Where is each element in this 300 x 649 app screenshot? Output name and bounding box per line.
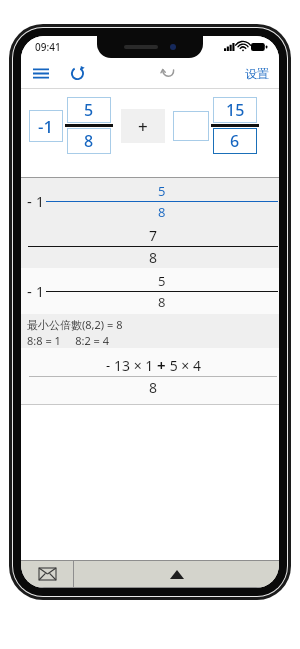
staticText: 6 — [230, 130, 240, 152]
staticText: 8 — [149, 378, 158, 397]
staticText: - — [106, 356, 114, 374]
button[interactable]: 5 — [67, 97, 111, 123]
staticText: 5 — [158, 182, 166, 200]
staticText: 09:41 — [35, 40, 61, 54]
button[interactable]: 最小公倍數(8,2) = 8 — [21, 314, 279, 348]
button[interactable]: -1 — [29, 110, 63, 142]
button[interactable]: Refresh — [63, 59, 91, 87]
staticText: 8 — [158, 293, 166, 311]
button[interactable]: Show keypad — [74, 561, 279, 587]
staticText: 设置 — [245, 66, 269, 81]
staticText: 最小公倍數(8,2) = 8 — [27, 317, 123, 332]
button[interactable]: 7 — [21, 224, 279, 268]
staticText: + — [138, 115, 148, 138]
button[interactable]: - — [21, 178, 279, 224]
button[interactable]: Mail — [21, 561, 73, 587]
staticText: - — [27, 191, 36, 211]
staticText: 15 — [226, 99, 245, 121]
button[interactable]: + — [121, 109, 165, 143]
button[interactable]: 8 — [67, 128, 111, 154]
button[interactable] — [173, 111, 209, 141]
staticText: 8:8 = 1 8:2 = 4 — [27, 333, 109, 348]
button[interactable]: 15 — [213, 97, 257, 123]
staticText: 5 — [158, 272, 166, 290]
button[interactable]: Undo — [154, 59, 182, 87]
button[interactable]: 6 — [213, 128, 257, 154]
staticText: -1 — [38, 115, 54, 138]
button[interactable]: - — [21, 268, 279, 314]
button[interactable]: 设置 — [241, 62, 273, 85]
button[interactable]: - — [21, 348, 279, 404]
button[interactable]: Menu — [27, 59, 55, 87]
staticText: 8 — [149, 248, 158, 267]
staticText: 8 — [158, 203, 166, 221]
staticText: 13 × 1 — [114, 356, 157, 375]
staticText: 1 — [36, 192, 45, 211]
staticText: + — [157, 355, 166, 375]
staticText: 5 × 4 — [166, 356, 201, 375]
staticText: 8 — [84, 130, 94, 152]
staticText: 7 — [149, 226, 158, 245]
staticText: 1 — [36, 282, 45, 301]
staticText: - — [27, 281, 36, 301]
staticText: 5 — [84, 99, 94, 121]
